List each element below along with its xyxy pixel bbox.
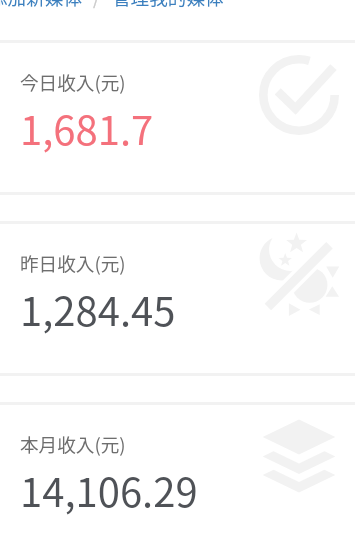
button[interactable]: 本月收入(元) <box>0 402 355 539</box>
staticText: / <box>93 0 101 10</box>
staticText: 本月收入(元) <box>20 430 126 457</box>
button[interactable]: 管理我的媒体 <box>112 0 224 10</box>
staticText: 1,284.45 <box>20 280 176 338</box>
button[interactable]: 今日收入(元) <box>0 40 355 195</box>
button[interactable]: 昨日收入(元) <box>0 221 355 376</box>
button[interactable]: 添加新媒体 <box>0 0 82 10</box>
staticText: 今日收入(元) <box>20 68 126 95</box>
staticText: 1,681.7 <box>20 99 154 157</box>
staticText: 昨日收入(元) <box>20 249 126 276</box>
staticText: 14,106.29 <box>20 461 198 519</box>
